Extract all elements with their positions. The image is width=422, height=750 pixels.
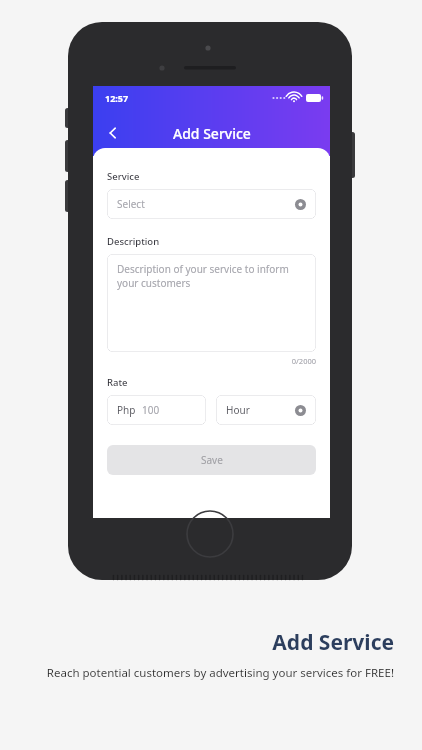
staticText: Rate — [107, 376, 128, 389]
staticText: Save — [201, 453, 223, 467]
button[interactable]: Php — [107, 395, 206, 425]
button[interactable]: Hour — [216, 395, 316, 425]
staticText: 12:57 — [105, 92, 129, 104]
staticText: Reach potential customers by advertising… — [28, 665, 394, 681]
button[interactable]: Description of your service to inform yo… — [107, 254, 316, 352]
staticText: 100 — [142, 403, 160, 417]
staticText: Service — [107, 170, 140, 183]
staticText: Description of your service to inform yo… — [117, 262, 306, 290]
button[interactable]: Select — [107, 189, 316, 219]
staticText: Hour — [226, 403, 250, 417]
staticText: Select — [117, 197, 145, 211]
staticText: Add Service — [173, 124, 251, 143]
staticText: Description — [107, 235, 160, 248]
staticText: 0/2000 — [107, 356, 316, 366]
staticText: Add Service — [272, 628, 394, 657]
button[interactable]: Save — [107, 445, 316, 475]
staticText: Php — [117, 403, 136, 417]
button[interactable]: Back — [97, 117, 129, 149]
